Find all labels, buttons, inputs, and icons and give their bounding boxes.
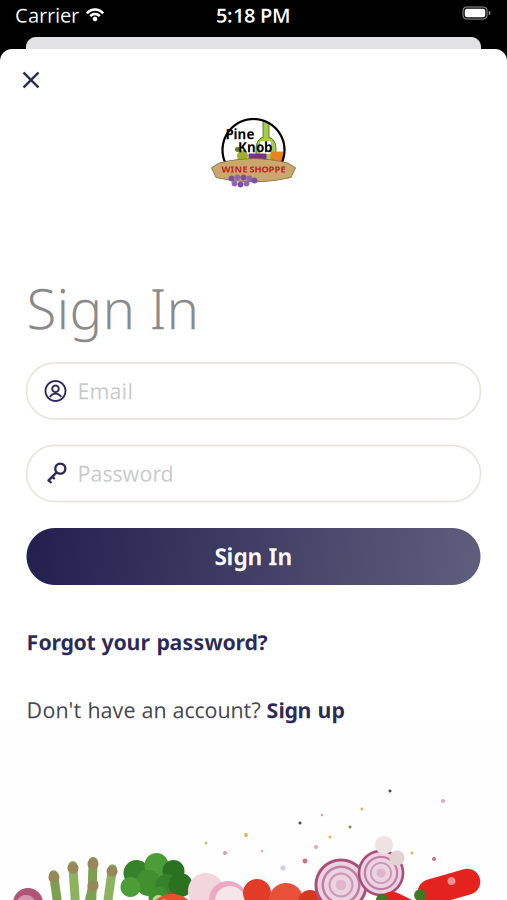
button[interactable]: Sign In bbox=[26, 528, 480, 585]
staticText: Sign In bbox=[214, 541, 292, 571]
button[interactable]: Sign up bbox=[266, 696, 344, 724]
staticText: Sign up bbox=[266, 696, 344, 724]
staticText: Don't have an account? bbox=[26, 696, 260, 724]
button[interactable]: Close bbox=[21, 70, 40, 89]
staticText: Forgot your password? bbox=[26, 628, 267, 656]
staticText: Pine bbox=[225, 125, 254, 143]
staticText: Password bbox=[77, 459, 173, 488]
staticText: Sign In bbox=[26, 272, 199, 344]
staticText: Email bbox=[77, 377, 133, 405]
staticText: Carrier bbox=[15, 2, 79, 28]
button[interactable]: Forgot your password? bbox=[26, 628, 267, 656]
staticText: Knob bbox=[238, 138, 272, 156]
staticText: 5:18 PM bbox=[216, 2, 291, 28]
staticText: WINE SHOPPE bbox=[221, 163, 285, 175]
